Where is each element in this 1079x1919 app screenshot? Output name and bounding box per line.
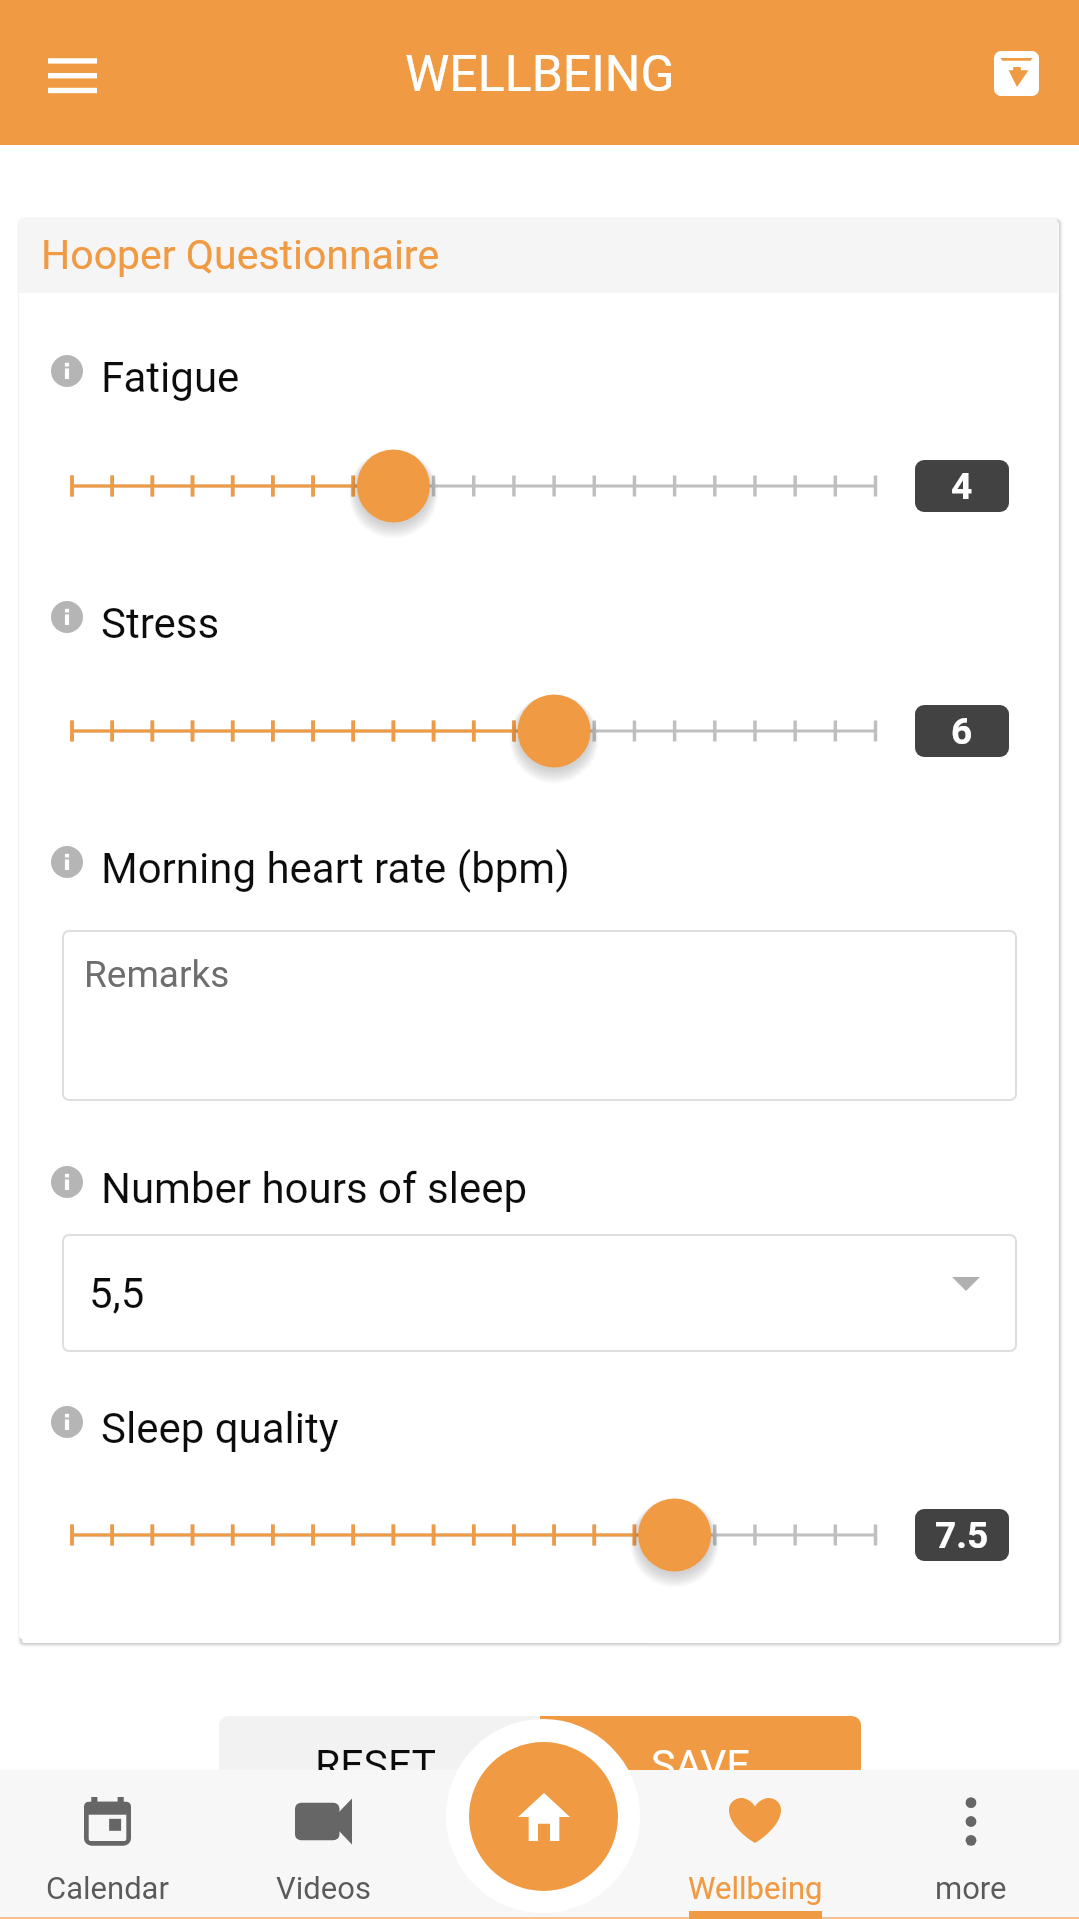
button[interactable]: 7.5 (915, 1509, 1009, 1561)
staticText: Wellbeing (688, 1870, 823, 1906)
button[interactable]: RESET (219, 1716, 540, 1814)
button[interactable]: Wellbeing (647, 1770, 863, 1919)
staticText: 6 (951, 710, 973, 753)
button[interactable]: SAVE (540, 1716, 861, 1814)
staticText: Videos (276, 1870, 371, 1906)
staticText: Number hours of sleep (101, 1164, 528, 1213)
staticText: Fatigue (101, 353, 240, 402)
button[interactable]: Archive (974, 31, 1058, 115)
staticText: Hooper Questionnaire (41, 231, 440, 279)
button[interactable]: Calendar (0, 1770, 215, 1919)
button[interactable]: Fatigue (51, 336, 240, 406)
button[interactable]: Number hours of sleep (51, 1147, 528, 1217)
staticText: Morning heart rate (bpm) (101, 844, 570, 893)
staticText: Stress (101, 599, 220, 648)
button[interactable]: Sleep quality (51, 1387, 339, 1457)
button[interactable]: Morning heart rate (bpm) (51, 827, 570, 897)
staticText: WELLBEING (405, 45, 675, 104)
button[interactable]: 4 (915, 460, 1009, 512)
staticText: RESET (315, 1741, 437, 1789)
button[interactable]: Remarks (62, 930, 1017, 1101)
button[interactable]: more (863, 1770, 1079, 1919)
button[interactable]: Videos (215, 1770, 431, 1919)
staticText: Calendar (46, 1870, 169, 1906)
button[interactable]: Home (469, 1742, 618, 1891)
button[interactable]: Menu (29, 30, 115, 116)
staticText: SAVE (651, 1741, 750, 1789)
staticText: 5,5 (89, 1269, 145, 1318)
staticText: 7.5 (935, 1514, 989, 1557)
staticText: Sleep quality (101, 1404, 339, 1453)
button[interactable]: Stress slider (19, 686, 1058, 776)
button[interactable]: 6 (915, 705, 1009, 757)
staticText: more (935, 1870, 1007, 1906)
button[interactable]: Stress (51, 582, 220, 652)
staticText: Remarks (84, 953, 230, 996)
button[interactable]: 5,5 (62, 1234, 1017, 1352)
button[interactable]: Fatigue slider (19, 441, 1058, 531)
staticText: 4 (951, 465, 973, 508)
button[interactable]: Sleep quality slider (19, 1490, 1058, 1580)
